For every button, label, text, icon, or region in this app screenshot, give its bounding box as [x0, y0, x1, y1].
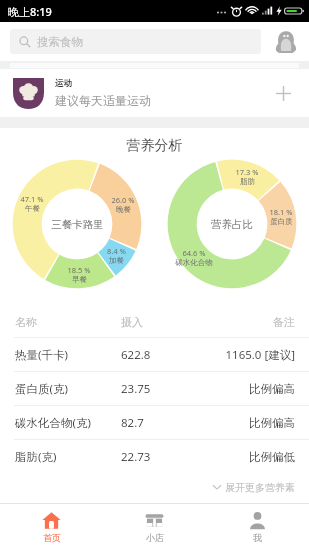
staticText: 1165.0 [建议] — [202, 347, 295, 363]
staticText: 脂肪(克) — [15, 449, 121, 465]
staticText: 碳水化合物 — [175, 258, 213, 267]
staticText: 脂肪 — [240, 177, 255, 186]
staticText: 64.6 % — [182, 248, 206, 258]
staticText: 622.8 — [121, 347, 202, 363]
staticText: 比例偏低 — [202, 450, 295, 464]
staticText: 比例偏高 — [202, 382, 295, 396]
staticText: 蛋白质 — [270, 217, 293, 226]
staticText: 22.73 — [121, 449, 202, 465]
button[interactable]: 搜索食物 — [10, 29, 261, 54]
button[interactable]: 碳水化合物(克) — [0, 406, 309, 439]
staticText: 首页 — [43, 532, 61, 543]
staticText: 47.1 % — [20, 194, 44, 204]
staticText: 23.75 — [121, 381, 202, 397]
button[interactable]: 我 — [206, 504, 309, 550]
staticText: 蛋白质(克) — [15, 381, 121, 397]
button[interactable]: 个人头像 — [272, 28, 299, 55]
staticText: 营养分析 — [0, 137, 309, 155]
staticText: 展开更多营养素 — [225, 481, 295, 494]
staticText: 名称 — [15, 315, 121, 329]
staticText: 晚上8:19 — [8, 4, 52, 19]
staticText: 早餐 — [72, 275, 87, 284]
staticText: 晚餐 — [116, 205, 131, 214]
staticText: 我 — [253, 532, 262, 543]
button[interactable]: 展开更多营养素 — [0, 473, 309, 501]
button[interactable]: 运动 — [0, 69, 309, 117]
staticText: 搜索食物 — [37, 35, 83, 49]
staticText: 营养占比 — [211, 218, 253, 231]
staticText: 摄入 — [121, 315, 202, 329]
staticText: 比例偏高 — [202, 416, 295, 430]
staticText: 运动 — [55, 78, 72, 89]
staticText: 8.4 % — [107, 246, 126, 256]
button[interactable]: 首页 — [0, 504, 103, 550]
staticText: 三餐卡路里 — [51, 218, 104, 231]
staticText: 小店 — [146, 532, 164, 543]
button[interactable]: 添加 — [269, 79, 297, 107]
staticText: 碳水化合物(克) — [15, 415, 121, 431]
button[interactable]: 蛋白质(克) — [0, 372, 309, 405]
staticText: 午餐 — [25, 204, 40, 213]
staticText: 加餐 — [109, 256, 124, 265]
staticText: 26.0 % — [111, 195, 135, 205]
staticText: 82.7 — [121, 415, 202, 431]
button[interactable]: 小店 — [103, 504, 206, 550]
staticText: 18.5 % — [67, 265, 91, 275]
staticText: 18.1 % — [269, 207, 293, 217]
staticText: 建议每天适量运动 — [55, 93, 151, 108]
staticText: 热量(千卡) — [15, 347, 121, 363]
button[interactable]: 脂肪(克) — [0, 440, 309, 473]
button[interactable]: 热量(千卡) — [0, 338, 309, 371]
staticText: 17.3 % — [235, 167, 259, 177]
staticText: 备注 — [202, 315, 295, 329]
